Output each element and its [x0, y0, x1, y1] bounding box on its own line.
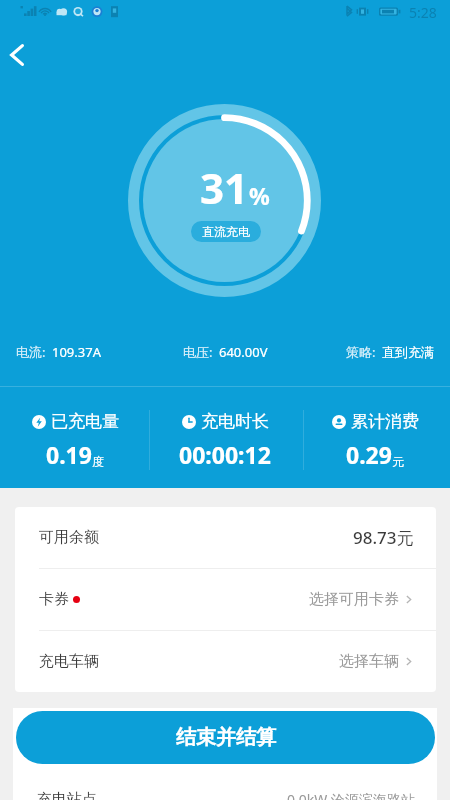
button[interactable]: Back — [0, 33, 39, 77]
staticText: 充电时长 — [201, 411, 269, 432]
staticText: 可用余额 — [39, 528, 99, 547]
staticText: % — [249, 180, 270, 211]
staticText: 卡券 — [39, 590, 69, 609]
staticText: 累计消费 — [351, 411, 419, 432]
button[interactable]: 充电车辆 — [15, 631, 436, 692]
staticText: 0.29 — [346, 439, 392, 470]
button[interactable]: 卡券 — [15, 569, 436, 630]
staticText: 直到充满 — [382, 344, 434, 360]
staticText: 元 — [392, 454, 404, 469]
button[interactable]: 充电站点 — [13, 776, 437, 800]
staticText: 结束并结算 — [176, 725, 276, 750]
staticText: 选择可用卡券 — [309, 590, 399, 609]
staticText: 31 — [200, 159, 249, 216]
staticText: 直流充电 — [202, 224, 250, 239]
button[interactable]: 结束并结算 — [16, 711, 435, 764]
staticText: 策略: — [346, 343, 376, 361]
staticText: 充电车辆 — [39, 652, 99, 671]
staticText: 电压: — [183, 343, 213, 361]
staticText: 00:00:12 — [179, 439, 271, 470]
staticText: 109.37A — [52, 343, 101, 361]
staticText: 0.19 — [46, 439, 92, 470]
staticText: 640.00V — [219, 343, 268, 361]
staticText: 电流: — [16, 343, 46, 361]
staticText: 98.73元 — [353, 526, 414, 549]
staticText: 度 — [92, 454, 104, 469]
button[interactable]: 可用余额 — [15, 507, 436, 568]
staticText: 充电站点 — [37, 790, 97, 800]
staticText: 已充电量 — [51, 411, 119, 432]
staticText: 5:28 — [409, 3, 437, 22]
staticText: 0.0kW 沧源滨海路站 — [287, 790, 415, 800]
staticText: 选择车辆 — [339, 652, 399, 671]
